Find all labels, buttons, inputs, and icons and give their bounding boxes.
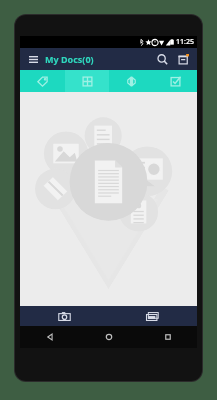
button[interactable]: Compare tab <box>109 70 153 92</box>
button[interactable]: Tasks tab <box>153 70 197 92</box>
staticText: My Docs(0) <box>45 53 94 65</box>
button[interactable]: Home <box>79 326 138 348</box>
button[interactable]: Back <box>20 326 79 348</box>
button[interactable]: Tags tab <box>20 70 65 92</box>
button[interactable]: Search <box>153 50 171 68</box>
button[interactable]: Take photo <box>20 306 108 326</box>
button[interactable]: Recent apps <box>138 326 197 348</box>
button[interactable]: Import from gallery <box>108 306 197 326</box>
button[interactable]: Open navigation menu <box>25 51 41 67</box>
other: No documents yet <box>20 92 197 306</box>
button[interactable]: Archive, 1 new item <box>174 50 192 68</box>
staticText: 11:25 <box>176 37 194 47</box>
button[interactable]: Grid tab <box>65 70 109 92</box>
